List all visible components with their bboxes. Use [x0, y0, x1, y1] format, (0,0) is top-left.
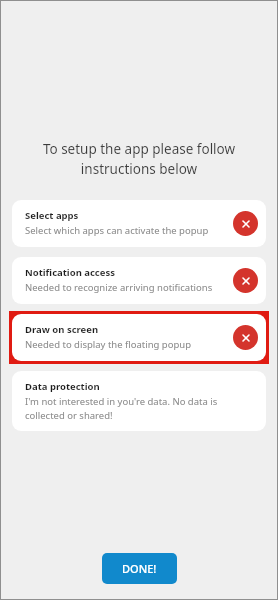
button[interactable]: DONE! — [102, 553, 177, 584]
staticText: To setup the app please follow instructi… — [18, 140, 260, 178]
button[interactable]: Permission not granted — [233, 211, 258, 236]
button[interactable]: Permission not granted — [233, 268, 258, 293]
staticText: Data protection — [25, 380, 100, 393]
staticText: Select apps — [25, 209, 79, 222]
button[interactable]: Draw on screen — [12, 314, 266, 361]
staticText: I'm not interested in you're data. No da… — [25, 395, 258, 421]
staticText: DONE! — [122, 561, 157, 576]
staticText: Needed to display the floating popup — [25, 338, 192, 351]
button[interactable]: Permission not granted — [233, 325, 258, 350]
staticText: Select which apps can activate the popup — [25, 224, 209, 237]
button[interactable]: Data protection — [12, 371, 266, 431]
staticText: Notification access — [25, 266, 115, 279]
staticText: Draw on screen — [25, 323, 99, 336]
staticText: Needed to recognize arriving notificatio… — [25, 281, 213, 294]
button[interactable]: Select apps — [12, 200, 266, 247]
button[interactable]: Notification access — [12, 257, 266, 304]
